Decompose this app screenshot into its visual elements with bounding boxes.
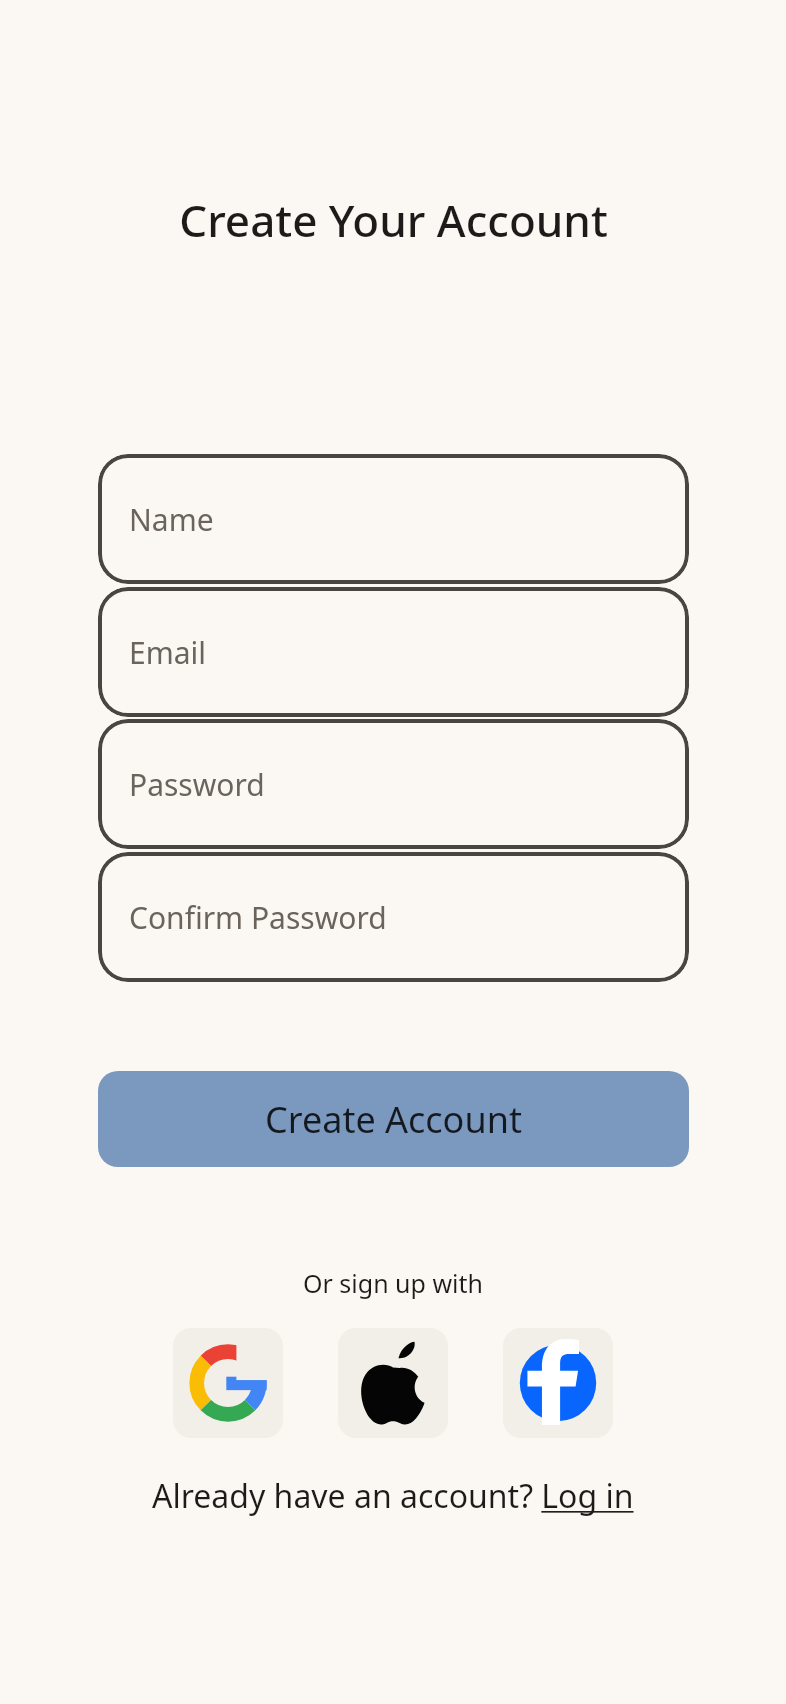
button[interactable]: Sign up with Apple xyxy=(338,1328,448,1438)
staticText: Confirm Password xyxy=(129,897,387,938)
staticText: Email xyxy=(129,632,207,673)
staticText: Password xyxy=(129,764,265,805)
button[interactable]: Confirm Password xyxy=(98,852,689,982)
staticText: Already have an account? Log in xyxy=(152,1474,634,1518)
staticText: Create Account xyxy=(265,1095,522,1144)
staticText: Or sign up with xyxy=(303,1266,484,1300)
button[interactable]: Create Account xyxy=(98,1071,689,1167)
button[interactable]: Email xyxy=(98,587,689,717)
button[interactable]: Sign up with Facebook xyxy=(503,1328,613,1438)
staticText: Name xyxy=(129,499,214,540)
staticText: Create Your Account xyxy=(179,190,608,250)
button[interactable]: Sign up with Google xyxy=(173,1328,283,1438)
button[interactable]: Already have an account? Log in xyxy=(152,1474,634,1518)
button[interactable]: Password xyxy=(98,719,689,849)
button[interactable]: Name xyxy=(98,454,689,584)
